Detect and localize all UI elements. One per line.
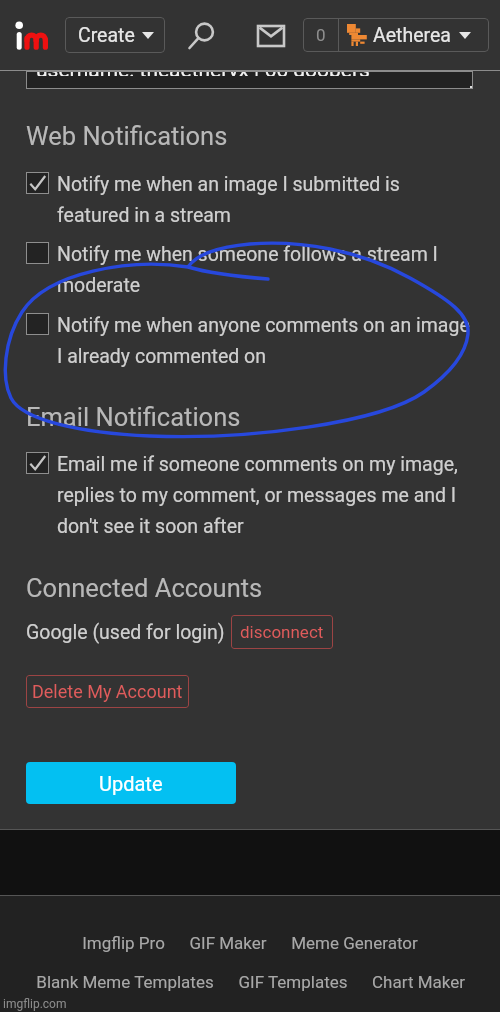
button[interactable]: Update (26, 762, 236, 804)
button[interactable]: Notify me when anyone comments on an ima… (0, 310, 500, 372)
button[interactable]: Email me if someone comments on my image… (0, 449, 500, 542)
staticText: replies to my comment, or messages me an… (57, 484, 457, 507)
staticText: Email me if someone comments on my image… (57, 453, 458, 476)
staticText: don't see it soon after (57, 515, 244, 538)
staticText: featured in a stream (57, 204, 231, 227)
button[interactable]: Notify me when someone follows a stream … (0, 239, 500, 301)
button[interactable]: GIF Maker (189, 933, 267, 953)
button[interactable]: Create (65, 17, 165, 53)
button[interactable]: Delete My Account (26, 675, 189, 708)
staticText: Blank Meme Templates (36, 972, 214, 992)
staticText: Create (78, 24, 135, 47)
staticText: GIF Maker (189, 933, 267, 953)
staticText: Notify me when an image I submitted is (57, 173, 400, 196)
button[interactable]: Notify me when an image I submitted is (0, 169, 500, 231)
staticText: Chart Maker (372, 972, 465, 992)
button[interactable]: Chart Maker (372, 972, 465, 992)
button[interactable]: disconnect (231, 615, 333, 649)
staticText: Delete My Account (32, 681, 183, 702)
staticText: 0 (316, 25, 326, 45)
staticText: disconnect (240, 622, 324, 642)
staticText: Notify me when anyone comments on an ima… (57, 314, 470, 337)
staticText: Connected Accounts (26, 573, 263, 603)
staticText: Web Notifications (26, 121, 228, 151)
staticText: Update (99, 772, 163, 795)
button[interactable]: Blank Meme Templates (36, 972, 214, 992)
staticText: Imgflip Pro (82, 933, 165, 953)
staticText: Aetherea (373, 24, 451, 47)
staticText: GIF Templates (238, 972, 348, 992)
button[interactable]: Messages (250, 16, 292, 54)
button[interactable]: Meme Generator (291, 933, 418, 953)
staticText: Email Notifications (26, 402, 241, 432)
staticText: Google (used for login) (26, 621, 225, 644)
button[interactable]: Imgflip Pro (82, 933, 165, 953)
button[interactable]: GIF Templates (238, 972, 348, 992)
staticText: moderate (57, 274, 141, 297)
staticText: username: theaetheryx | 66 goobers (36, 71, 370, 76)
staticText: Meme Generator (291, 933, 418, 953)
staticText: I already commented on (57, 345, 267, 368)
button[interactable]: Imgflip home (12, 14, 56, 56)
staticText: imgflip.com (3, 997, 67, 1011)
staticText: Notify me when someone follows a stream … (57, 243, 438, 266)
button[interactable]: 0 (303, 18, 489, 52)
button[interactable]: Search (185, 16, 223, 54)
